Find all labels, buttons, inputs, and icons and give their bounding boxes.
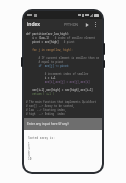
staticText: # pivot bbox=[59, 40, 75, 44]
staticText: Sorted array is: bbox=[28, 136, 55, 140]
staticText: 1 bbox=[28, 142, 30, 145]
staticText: # low --> Starting index, bbox=[26, 108, 67, 112]
staticText: # index of smaller element bbox=[50, 36, 96, 40]
staticText: 5 bbox=[28, 145, 30, 148]
button[interactable]: Enter any input here (if any) bbox=[24, 118, 102, 130]
staticText: if arr[j] <= pivot: bbox=[26, 64, 70, 68]
staticText: # equal to pivot bbox=[26, 60, 64, 64]
staticText: pivot = arr[high] bbox=[26, 40, 59, 44]
staticText: 9 bbox=[28, 154, 30, 157]
staticText: 7 bbox=[28, 148, 30, 151]
staticText: arr[i+1],arr[high] = arr[high],arr[i+1] bbox=[26, 88, 93, 92]
staticText: i = i+1 bbox=[26, 76, 56, 80]
staticText: 8 bbox=[28, 151, 30, 154]
staticText: return ( i+1 ) bbox=[26, 92, 55, 96]
button[interactable]: index bbox=[27, 21, 41, 28]
staticText: # The main function that implements Quic… bbox=[26, 100, 97, 104]
staticText: 10 bbox=[28, 157, 32, 160]
staticText: Enter any input here (if any) bbox=[27, 122, 69, 126]
staticText: i = (low-1) bbox=[26, 36, 50, 40]
staticText: for j in range(low, high): bbox=[26, 48, 73, 52]
staticText: # If current element is smaller than or bbox=[26, 56, 100, 60]
staticText: # increment index of smaller element bbox=[26, 72, 100, 76]
button[interactable]: PYTHON bbox=[63, 22, 80, 27]
button[interactable]: Run bbox=[83, 21, 90, 28]
staticText: def partition(arr,low,high): bbox=[26, 32, 70, 36]
staticText: # arr[] --> Array to be sorted, bbox=[26, 104, 75, 108]
staticText: # high --> Ending index bbox=[26, 112, 65, 116]
staticText: index bbox=[27, 21, 41, 28]
button[interactable]: More options bbox=[92, 21, 99, 28]
staticText: PYTHON bbox=[64, 22, 79, 27]
staticText: arr[i],arr[j] = arr[j],arr[i] bbox=[26, 80, 90, 84]
